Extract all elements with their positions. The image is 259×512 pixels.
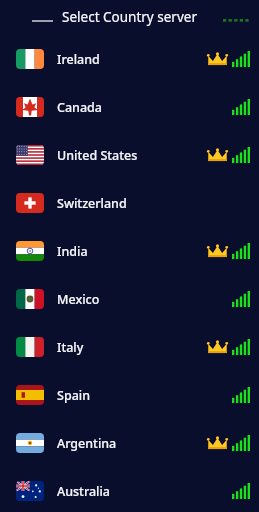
- button[interactable]: Ireland: [0, 35, 259, 83]
- other: Signal strength: [232, 339, 250, 355]
- staticText: Mexico: [57, 291, 100, 308]
- button[interactable]: Spain: [0, 371, 259, 419]
- button[interactable]: Mexico: [0, 275, 259, 323]
- staticText: Select Country server: [0, 8, 259, 26]
- other: Signal strength: [232, 291, 250, 307]
- staticText: Ireland: [57, 51, 100, 68]
- staticText: Switzerland: [57, 195, 127, 212]
- staticText: United States: [57, 147, 138, 164]
- other: Signal strength: [232, 147, 250, 163]
- other: Premium: [207, 339, 228, 355]
- other: Premium: [207, 147, 228, 163]
- other: Premium: [207, 243, 228, 259]
- staticText: Spain: [57, 387, 90, 404]
- other: Signal strength: [232, 387, 250, 403]
- button[interactable]: Italy: [0, 323, 259, 371]
- button[interactable]: Argentina: [0, 419, 259, 467]
- staticText: Canada: [57, 99, 102, 116]
- other: Signal strength: [232, 243, 250, 259]
- other: Premium: [207, 51, 228, 67]
- other: Signal strength: [232, 51, 250, 67]
- staticText: India: [57, 243, 88, 260]
- button[interactable]: India: [0, 227, 259, 275]
- other: Premium: [207, 435, 228, 451]
- staticText: Australia: [57, 483, 110, 500]
- button[interactable]: Switzerland: [0, 179, 259, 227]
- button[interactable]: United States: [0, 131, 259, 179]
- button[interactable]: Canada: [0, 83, 259, 131]
- other: Signal strength: [232, 99, 250, 115]
- button[interactable]: Australia: [0, 467, 259, 512]
- staticText: Argentina: [57, 435, 117, 452]
- staticText: Italy: [57, 339, 84, 356]
- other: Signal strength: [232, 483, 250, 499]
- other: Signal strength: [232, 435, 250, 451]
